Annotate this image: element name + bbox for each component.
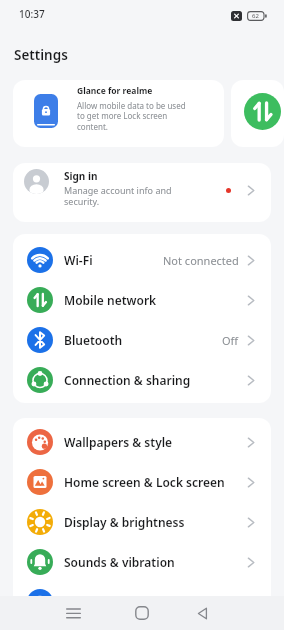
staticText: Sign in bbox=[64, 169, 98, 183]
button[interactable]: Mobile network bbox=[13, 280, 271, 320]
staticText: 10:37 bbox=[19, 7, 45, 21]
staticText: Allow mobile data to be used to get more… bbox=[77, 100, 186, 133]
button[interactable]: Connection & sharing bbox=[13, 360, 271, 400]
staticText: Glance for realme bbox=[77, 85, 153, 97]
staticText: Wallpapers & style bbox=[64, 434, 173, 450]
staticText: Home screen & Lock screen bbox=[64, 474, 225, 490]
staticText: Sounds & vibration bbox=[64, 554, 175, 570]
staticText: Bluetooth bbox=[64, 332, 123, 348]
button[interactable]: Bluetooth bbox=[13, 320, 271, 360]
staticText: Off bbox=[222, 333, 239, 348]
button[interactable]: Home screen & Lock screen bbox=[13, 462, 271, 502]
staticText: Settings bbox=[14, 46, 68, 64]
button[interactable]: Display & brightness bbox=[13, 502, 271, 542]
staticText: Mobile network bbox=[64, 292, 157, 308]
staticText: Not connected bbox=[163, 253, 239, 268]
button[interactable]: Notifications bbox=[13, 582, 271, 622]
button[interactable]: Wi-Fi bbox=[13, 240, 271, 280]
staticText: Display & brightness bbox=[64, 514, 185, 530]
button[interactable]: Glance for realme bbox=[13, 80, 224, 147]
button[interactable]: Sounds & vibration bbox=[13, 542, 271, 582]
staticText: Manage account info and security. bbox=[64, 184, 172, 207]
button[interactable]: Wallpapers & style bbox=[13, 422, 271, 462]
staticText: Notifications bbox=[64, 594, 140, 610]
staticText: Connection & sharing bbox=[64, 372, 191, 388]
staticText: Wi-Fi bbox=[64, 252, 93, 268]
button[interactable] bbox=[231, 80, 284, 147]
button[interactable]: Sign in bbox=[13, 163, 271, 222]
staticText: 62 bbox=[252, 12, 259, 20]
